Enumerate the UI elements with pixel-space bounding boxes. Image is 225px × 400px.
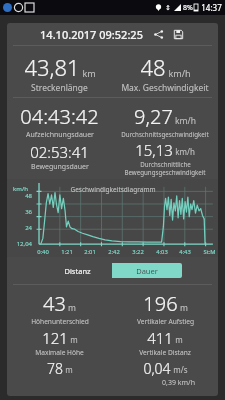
staticText: 78 [47, 359, 63, 378]
staticText: 43 [43, 290, 66, 317]
staticText: 48 [140, 52, 166, 82]
staticText: 411 [147, 328, 173, 348]
staticText: 1:21 [61, 248, 73, 256]
staticText: m [65, 364, 73, 375]
staticText: 2:42 [108, 248, 120, 256]
button[interactable]: Dauer [112, 263, 182, 278]
staticText: Streckenlänge [7, 82, 112, 94]
staticText: 9,27 [134, 103, 173, 130]
staticText: km/h [175, 146, 195, 157]
staticText: km/h [168, 67, 191, 79]
staticText: Vertikale Distanz [139, 348, 191, 357]
button[interactable]: Save [171, 27, 185, 41]
button[interactable]: Distanz [43, 263, 112, 278]
button[interactable]: 14.10.2017 09:52:25 [7, 23, 218, 45]
staticText: Bewegungsgeschwindigkeit [124, 168, 206, 176]
staticText: Distanz [64, 266, 91, 276]
staticText: Bewegungsdauer [31, 162, 89, 172]
staticText: 3:22 [132, 248, 144, 256]
staticText: km/h [13, 185, 28, 193]
staticText: 121 [42, 328, 68, 348]
staticText: 2:01 [84, 248, 96, 256]
button[interactable]: Share [151, 27, 165, 41]
staticText: 12,04 [10, 240, 32, 248]
staticText: 02:53:41 [30, 142, 89, 162]
staticText: Durchschnittliche [140, 160, 191, 168]
staticText: 0,04 [143, 359, 171, 378]
staticText: Maximale Höhe [35, 348, 84, 357]
staticText: 0:40 [37, 248, 49, 256]
staticText: Höhenunterschied [31, 317, 89, 326]
staticText: km/h [175, 115, 196, 127]
staticText: Max. Geschwindigkeit [112, 82, 218, 94]
staticText: Vertikaler Aufstieg [137, 317, 194, 326]
staticText: 196 [143, 290, 178, 317]
staticText: 4:43 [179, 248, 191, 256]
staticText: 24 [10, 224, 32, 232]
staticText: ↕ [165, 4, 171, 12]
staticText: m [68, 302, 76, 314]
staticText: m [70, 334, 78, 345]
staticText: m/s [173, 364, 188, 375]
staticText: St:M [203, 248, 216, 256]
staticText: 15,13 [135, 140, 173, 160]
staticText: Durchschnittsgeschwindigkeit [121, 130, 209, 138]
staticText: 04:43:42 [20, 103, 99, 130]
staticText: 4:03 [156, 248, 168, 256]
staticText: m [175, 334, 183, 345]
staticText: Dauer [136, 266, 158, 276]
staticText: 14:37 [201, 2, 222, 13]
staticText: m [180, 302, 188, 314]
staticText: 43,81 [24, 52, 80, 82]
staticText: Aufzeichnungsdauer [26, 130, 94, 140]
staticText: 0,39 km/h [162, 378, 195, 388]
staticText: 8% [183, 3, 193, 13]
staticText: 36 [10, 208, 32, 216]
staticText: Geschwindigkeitsdiagramm [70, 185, 156, 194]
staticText: 48 [10, 192, 32, 200]
staticText: 14.10.2017 09:52:25 [40, 27, 143, 42]
staticText: km [82, 67, 96, 79]
